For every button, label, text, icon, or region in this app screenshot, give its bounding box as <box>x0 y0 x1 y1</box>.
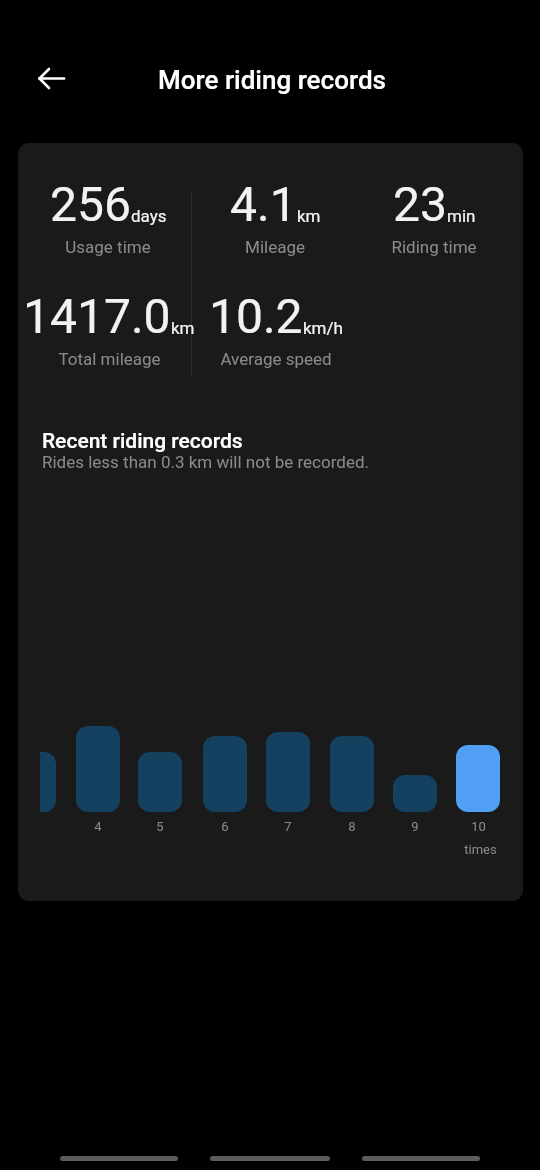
button[interactable]: Ride bar <box>266 732 310 812</box>
staticText: times <box>464 842 497 857</box>
staticText: Mileage <box>245 237 305 257</box>
staticText: Rides less than 0.3 km will not be recor… <box>42 452 369 472</box>
staticText: 8 <box>348 819 356 834</box>
staticText: 10.2 <box>209 288 303 344</box>
staticText: Usage time <box>65 237 151 257</box>
button[interactable]: Ride bar <box>76 726 120 812</box>
button[interactable]: Ride bar <box>138 752 182 812</box>
button[interactable]: Back <box>28 54 76 102</box>
staticText: Recent riding records <box>42 429 243 454</box>
staticText: More riding records <box>158 65 386 95</box>
staticText: min <box>447 206 476 226</box>
staticText: 7 <box>284 819 292 834</box>
staticText: 6 <box>221 819 229 834</box>
staticText: km/h <box>303 318 343 338</box>
staticText: Riding time <box>391 237 477 257</box>
staticText: 5 <box>156 819 164 834</box>
button[interactable]: Ride bar <box>393 775 437 812</box>
staticText: 10 <box>471 819 486 834</box>
staticText: 23 <box>393 176 447 232</box>
button[interactable]: Ride bar <box>456 745 500 812</box>
button[interactable]: Ride bar <box>330 736 374 812</box>
staticText: Average speed <box>220 349 332 369</box>
staticText: Total mileage <box>58 349 161 369</box>
button[interactable]: Ride bar <box>40 752 56 812</box>
staticText: 4 <box>94 819 102 834</box>
staticText: km <box>297 206 321 226</box>
staticText: 4.1 <box>230 176 297 232</box>
staticText: days <box>131 206 167 226</box>
staticText: 9 <box>411 819 419 834</box>
button[interactable]: Ride bar <box>203 736 247 812</box>
staticText: km <box>171 318 195 338</box>
staticText: 1417.0 <box>23 288 171 344</box>
staticText: 256 <box>50 176 131 232</box>
